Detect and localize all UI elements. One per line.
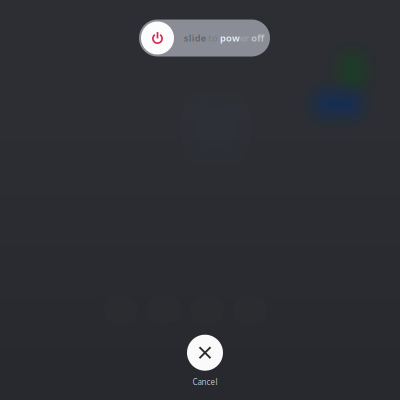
staticText: er bbox=[240, 32, 249, 44]
staticText: to bbox=[208, 32, 218, 44]
staticText: Cancel bbox=[192, 377, 217, 387]
staticText: slide bbox=[184, 32, 206, 44]
staticText: pow bbox=[220, 32, 240, 44]
button[interactable]: slide bbox=[139, 19, 270, 56]
button[interactable]: Cancel bbox=[165, 335, 245, 387]
staticText: off bbox=[251, 32, 264, 44]
